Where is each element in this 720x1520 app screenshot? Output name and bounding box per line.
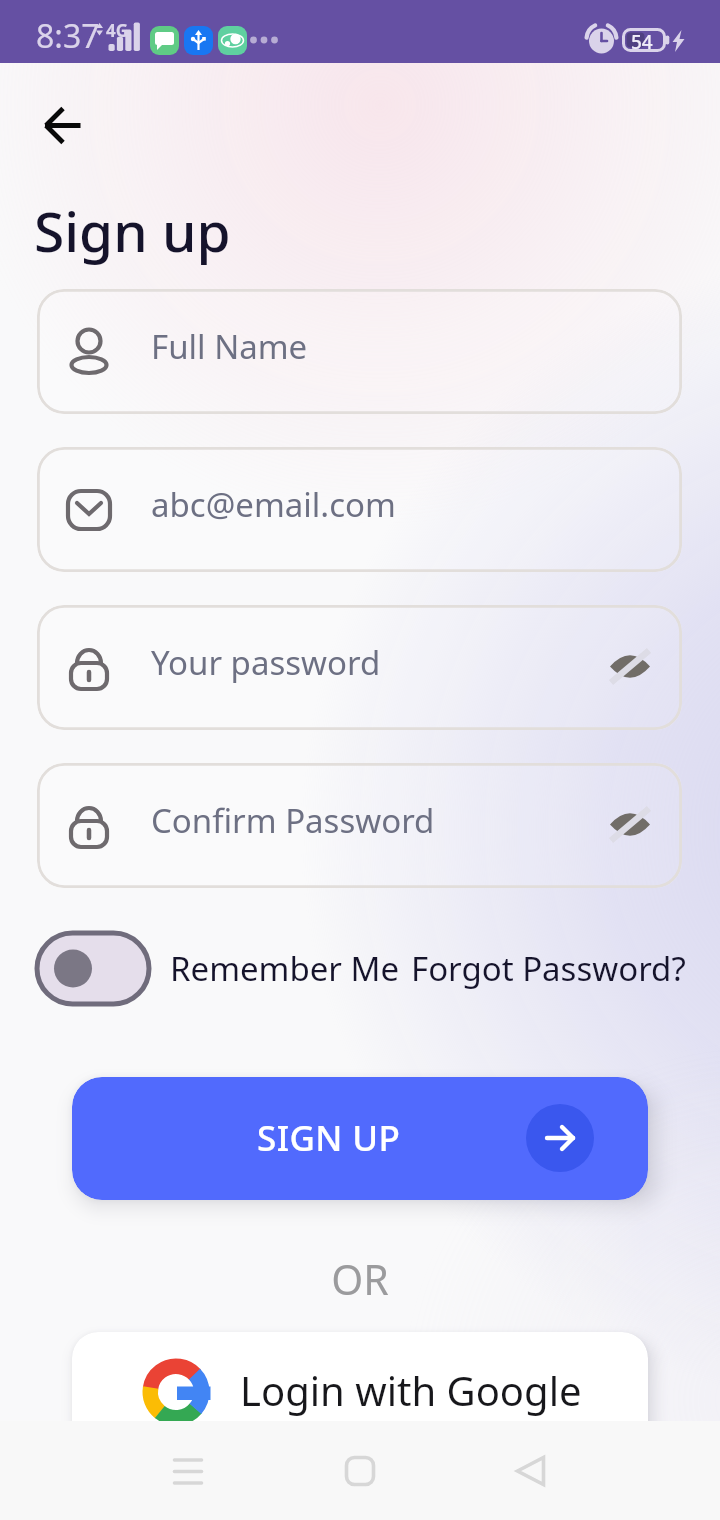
staticText: Sign up: [34, 193, 231, 268]
button[interactable]: Back: [34, 97, 92, 155]
button[interactable]: abc@email.com: [37, 447, 682, 572]
button[interactable]: Forgot Password?: [411, 946, 686, 991]
staticText: Remember Me: [170, 946, 400, 991]
button[interactable]: Home: [320, 1431, 400, 1511]
staticText: Login with Google: [240, 1363, 582, 1417]
staticText: Full Name: [151, 324, 308, 369]
button[interactable]: Full Name: [37, 289, 682, 414]
staticText: abc@email.com: [151, 482, 396, 527]
button[interactable]: Login with Google: [72, 1332, 648, 1450]
staticText: 54: [631, 29, 653, 55]
staticText: 4G: [106, 19, 129, 42]
staticText: OR: [0, 1251, 720, 1307]
button[interactable]: Show password: [606, 801, 654, 849]
staticText: Confirm Password: [151, 798, 435, 843]
button[interactable]: Confirm Password: [37, 763, 682, 888]
staticText: Your password: [151, 640, 381, 685]
staticText: SIGN UP: [257, 1114, 401, 1162]
button[interactable]: SIGN UP: [72, 1077, 648, 1200]
button[interactable]: Remember me: [37, 933, 149, 1004]
staticText: 8:37: [36, 14, 100, 58]
button[interactable]: Back: [491, 1431, 571, 1511]
button[interactable]: Your password: [37, 605, 682, 730]
button[interactable]: Recent apps: [148, 1431, 228, 1511]
button[interactable]: Show password: [606, 643, 654, 691]
